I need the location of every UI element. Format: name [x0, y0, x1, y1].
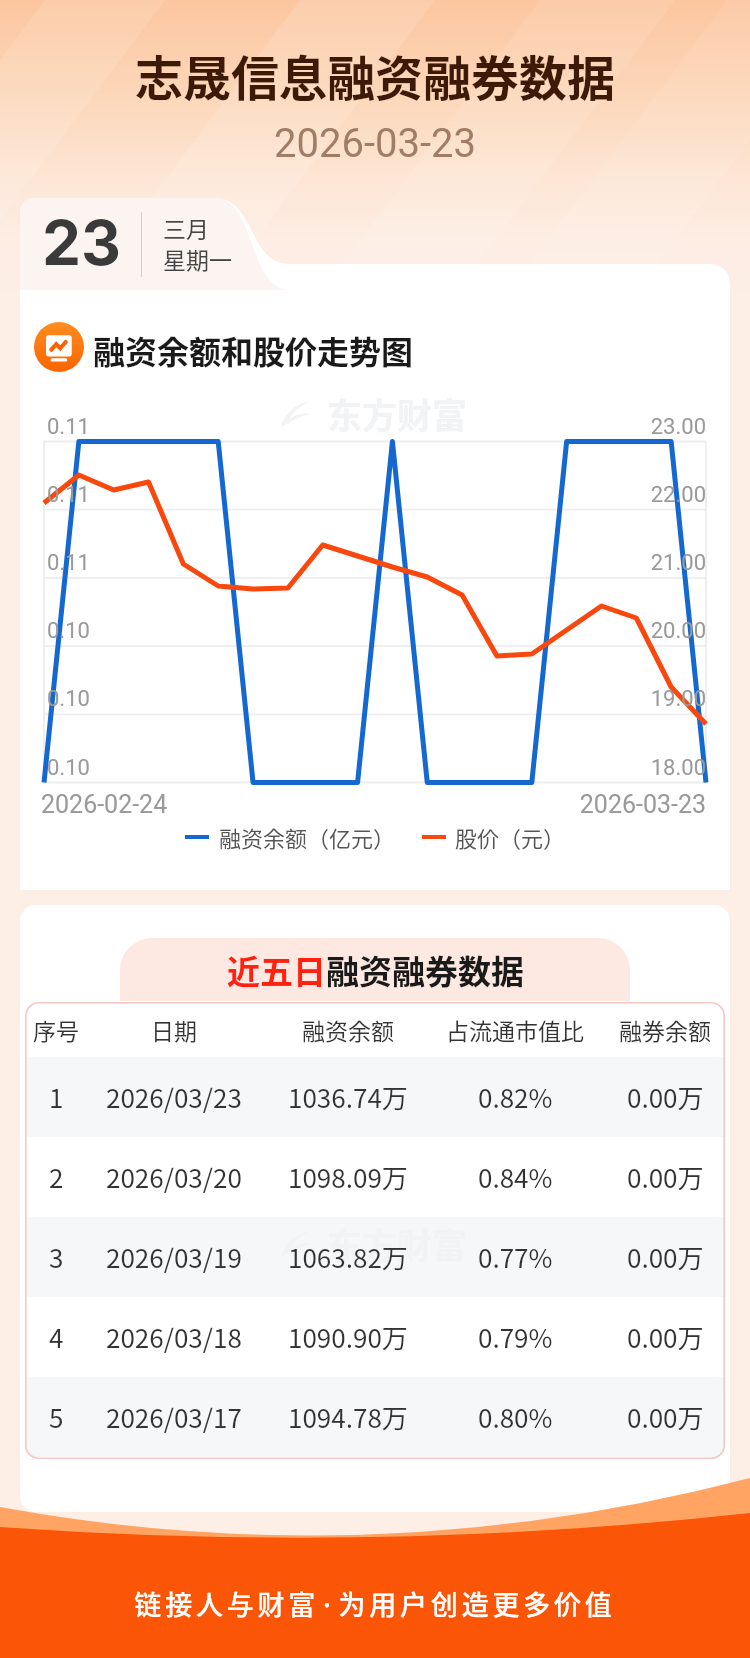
staticText: 0.79%: [478, 1318, 553, 1356]
staticText: 23: [42, 205, 122, 280]
staticText: 3: [49, 1238, 64, 1276]
staticText: 20.00: [506, 618, 706, 644]
staticText: 0.11: [47, 414, 90, 440]
staticText: 2026-02-24: [41, 790, 168, 819]
staticText: 2026-03-23: [0, 120, 750, 167]
staticText: 2: [49, 1158, 64, 1196]
staticText: 0.00万: [627, 1238, 704, 1276]
staticText: 0.00万: [627, 1318, 704, 1356]
staticText: 0.00万: [627, 1158, 704, 1196]
staticText: 19.00: [506, 686, 706, 712]
staticText: 18.00: [506, 755, 706, 781]
staticText: 21.00: [506, 550, 706, 576]
staticText: 0.11: [47, 550, 90, 576]
staticText: 1036.74万: [288, 1078, 408, 1116]
staticText: 近五日: [227, 946, 326, 994]
staticText: 0.10: [47, 686, 90, 712]
staticText: 志晟信息融资融券数据: [0, 40, 750, 110]
staticText: 2026/03/17: [106, 1398, 242, 1436]
staticText: 股价（元）: [455, 821, 566, 853]
staticText: 0.10: [47, 618, 90, 644]
staticText: 2026-03-23: [506, 790, 706, 819]
staticText: 1094.78万: [288, 1398, 408, 1436]
staticText: 1090.90万: [288, 1318, 408, 1356]
staticText: 东方财富: [327, 1218, 468, 1269]
staticText: 0.00万: [627, 1398, 704, 1436]
staticText: 三月: [163, 211, 209, 244]
staticText: 4: [49, 1318, 64, 1356]
staticText: 东方财富: [327, 388, 468, 439]
staticText: 序号: [33, 1013, 79, 1046]
staticText: 0.00万: [627, 1078, 704, 1116]
staticText: 22.00: [506, 482, 706, 508]
staticText: 占流通市值比: [446, 1013, 584, 1046]
staticText: 融资融券数据: [326, 946, 524, 994]
staticText: 1063.82万: [288, 1238, 408, 1276]
staticText: 1: [49, 1078, 64, 1116]
staticText: 23.00: [506, 414, 706, 440]
staticText: 5: [49, 1398, 64, 1436]
staticText: 2026/03/19: [106, 1238, 242, 1276]
staticText: 日期: [151, 1013, 197, 1046]
staticText: 融资余额（亿元）: [219, 821, 396, 853]
staticText: 2026/03/18: [106, 1318, 242, 1356]
staticText: 融资余额: [302, 1013, 394, 1046]
staticText: 链接人与财富·为用户创造更多价值: [0, 1584, 750, 1623]
staticText: 0.10: [47, 755, 90, 781]
staticText: 0.84%: [478, 1158, 553, 1196]
staticText: 融券余额: [619, 1013, 711, 1046]
staticText: 1098.09万: [288, 1158, 408, 1196]
staticText: 0.82%: [478, 1078, 553, 1116]
staticText: 0.80%: [478, 1398, 553, 1436]
staticText: 2026/03/23: [106, 1078, 242, 1116]
staticText: 星期一: [163, 242, 232, 275]
staticText: 0.11: [47, 482, 90, 508]
staticText: 2026/03/20: [106, 1158, 242, 1196]
staticText: 融资余额和股价走势图: [93, 327, 414, 373]
staticText: 0.77%: [478, 1238, 553, 1276]
